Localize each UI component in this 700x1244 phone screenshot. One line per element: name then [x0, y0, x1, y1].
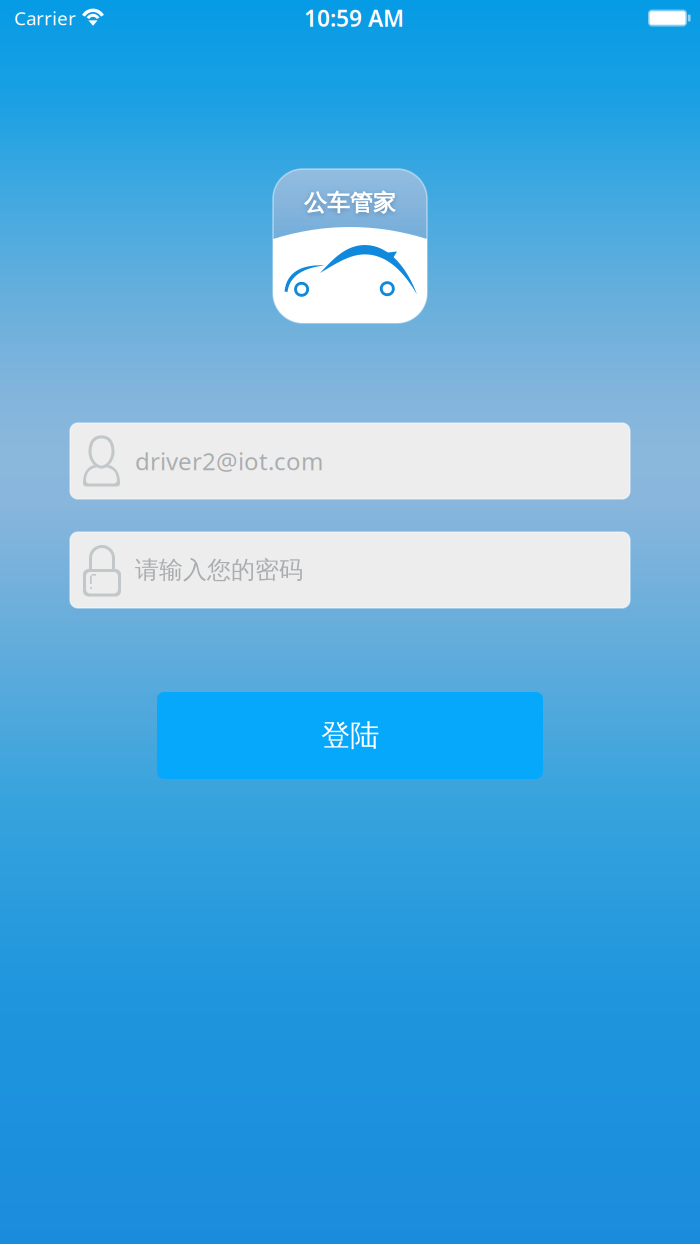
staticText: 10:59 AM: [304, 3, 404, 33]
button[interactable]: driver2@iot.com: [70, 423, 630, 499]
staticText: Carrier: [14, 6, 76, 30]
staticText: 登陆: [321, 717, 379, 753]
button[interactable]: 请输入您的密码: [70, 532, 630, 608]
staticText: 公车管家: [304, 189, 396, 217]
button[interactable]: 登陆: [157, 692, 543, 779]
staticText: 请输入您的密码: [135, 555, 303, 585]
staticText: driver2@iot.com: [135, 445, 323, 477]
